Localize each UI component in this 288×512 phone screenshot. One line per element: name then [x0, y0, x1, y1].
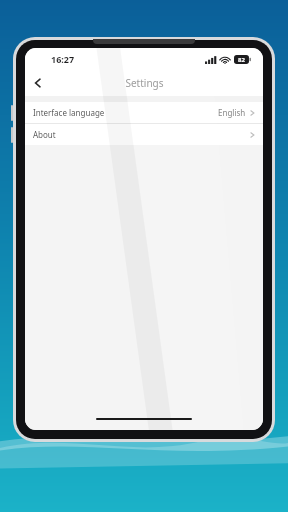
- button[interactable]: Back: [25, 70, 51, 96]
- button[interactable]: About: [25, 124, 263, 145]
- staticText: Settings: [125, 76, 164, 90]
- staticText: About: [33, 129, 56, 140]
- button[interactable]: Interface language: [25, 102, 263, 123]
- staticText: English: [218, 107, 246, 118]
- staticText: 16:27: [51, 53, 75, 65]
- staticText: 82: [238, 56, 245, 64]
- staticText: Interface language: [33, 107, 105, 118]
